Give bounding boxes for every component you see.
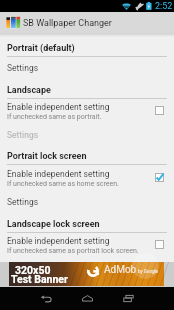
staticText: SB Wallpaper Changer: [23, 18, 112, 29]
staticText: AdMob: [104, 264, 137, 276]
staticText: Test Banner: [11, 273, 68, 285]
button[interactable]: Settings: [0, 123, 174, 145]
staticText: Settings: [7, 197, 39, 207]
button[interactable]: Settings: [0, 56, 174, 78]
staticText: If unchecked same as home screen.: [7, 180, 119, 188]
staticText: If unchecked same as portrait.: [7, 113, 102, 121]
button[interactable]: Recent apps: [106, 287, 150, 310]
button[interactable]: Settings: [0, 190, 174, 212]
staticText: 320x50: [15, 264, 51, 276]
staticText: Enable independent setting: [7, 169, 110, 179]
button[interactable]: Enable independent setting: [0, 165, 174, 191]
staticText: Enable independent setting: [7, 236, 110, 246]
staticText: Enable independent setting: [7, 102, 110, 112]
button[interactable]: Enable independent setting: [0, 232, 174, 258]
staticText: by Google: [138, 269, 158, 274]
staticText: Portrait (default): [7, 43, 75, 54]
staticText: Settings: [7, 63, 39, 73]
button[interactable]: Back: [24, 287, 68, 310]
button[interactable]: 320x50: [9, 262, 164, 286]
button[interactable]: Home: [65, 287, 109, 310]
staticText: Settings: [7, 130, 39, 140]
staticText: 2:52: [155, 1, 173, 12]
staticText: Landscape: [7, 85, 51, 96]
staticText: If unchecked same as portrait lock scree…: [7, 247, 139, 255]
button[interactable]: Enable independent setting: [0, 98, 174, 124]
staticText: Landscape lock screen: [7, 219, 100, 230]
staticText: Portrait lock screen: [7, 151, 87, 162]
